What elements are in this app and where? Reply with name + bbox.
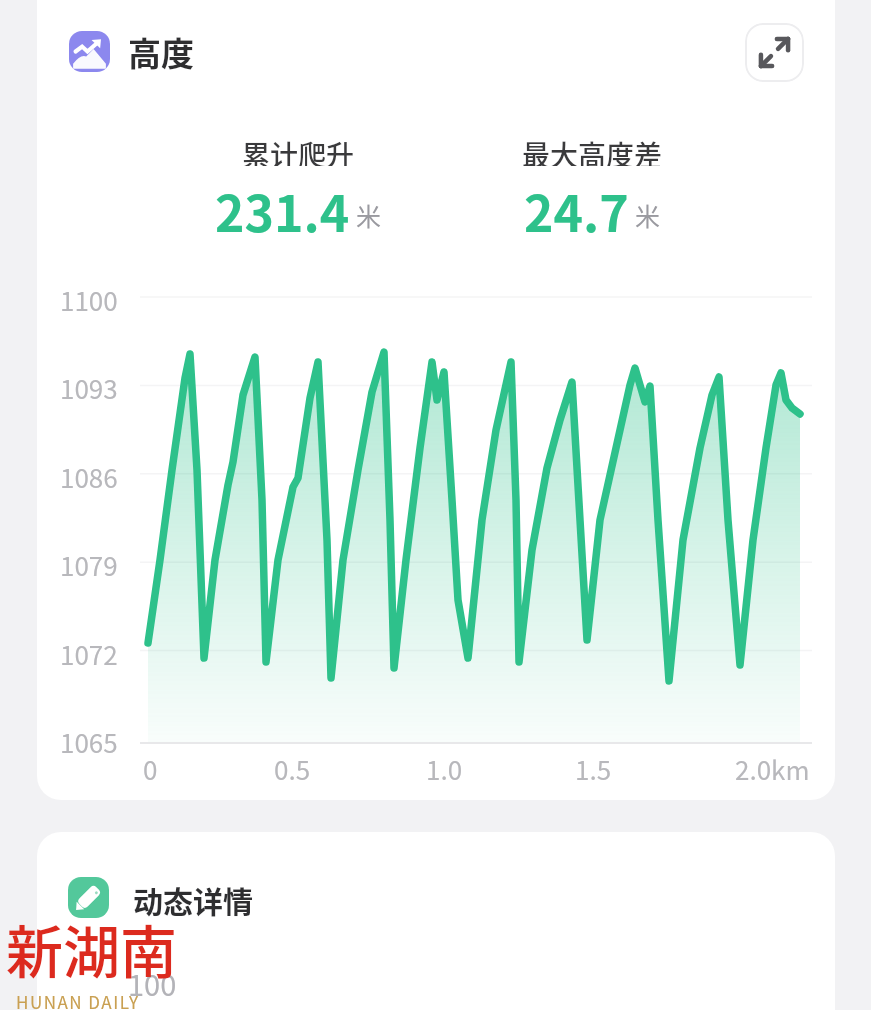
staticText: 1079 bbox=[60, 546, 118, 578]
staticText: 1093 bbox=[60, 369, 118, 401]
staticText: 1086 bbox=[60, 458, 118, 490]
staticText: 动态详情 bbox=[133, 878, 253, 921]
staticText: 高度 bbox=[128, 28, 194, 76]
staticText: 最大高度差 bbox=[522, 134, 663, 166]
staticText: 1072 bbox=[60, 635, 118, 667]
staticText: 0 bbox=[143, 750, 158, 782]
staticText: 2.0km bbox=[735, 750, 810, 782]
staticText: 100 bbox=[128, 962, 177, 1004]
staticText: HUNAN DAILY bbox=[16, 989, 140, 1010]
staticText: 1100 bbox=[60, 281, 118, 313]
staticText: 米 bbox=[356, 197, 382, 233]
staticText: 累计爬升 bbox=[242, 134, 355, 166]
staticText: 1.0 bbox=[426, 750, 463, 782]
staticText: 231.4 bbox=[215, 174, 350, 236]
staticText: 米 bbox=[635, 197, 661, 233]
staticText: 0.5 bbox=[274, 750, 311, 782]
button[interactable] bbox=[745, 23, 804, 82]
staticText: 24.7 bbox=[524, 174, 629, 236]
staticText: 1.5 bbox=[575, 750, 612, 782]
staticText: 新湖南 bbox=[6, 907, 177, 990]
staticText: 1065 bbox=[60, 723, 118, 755]
